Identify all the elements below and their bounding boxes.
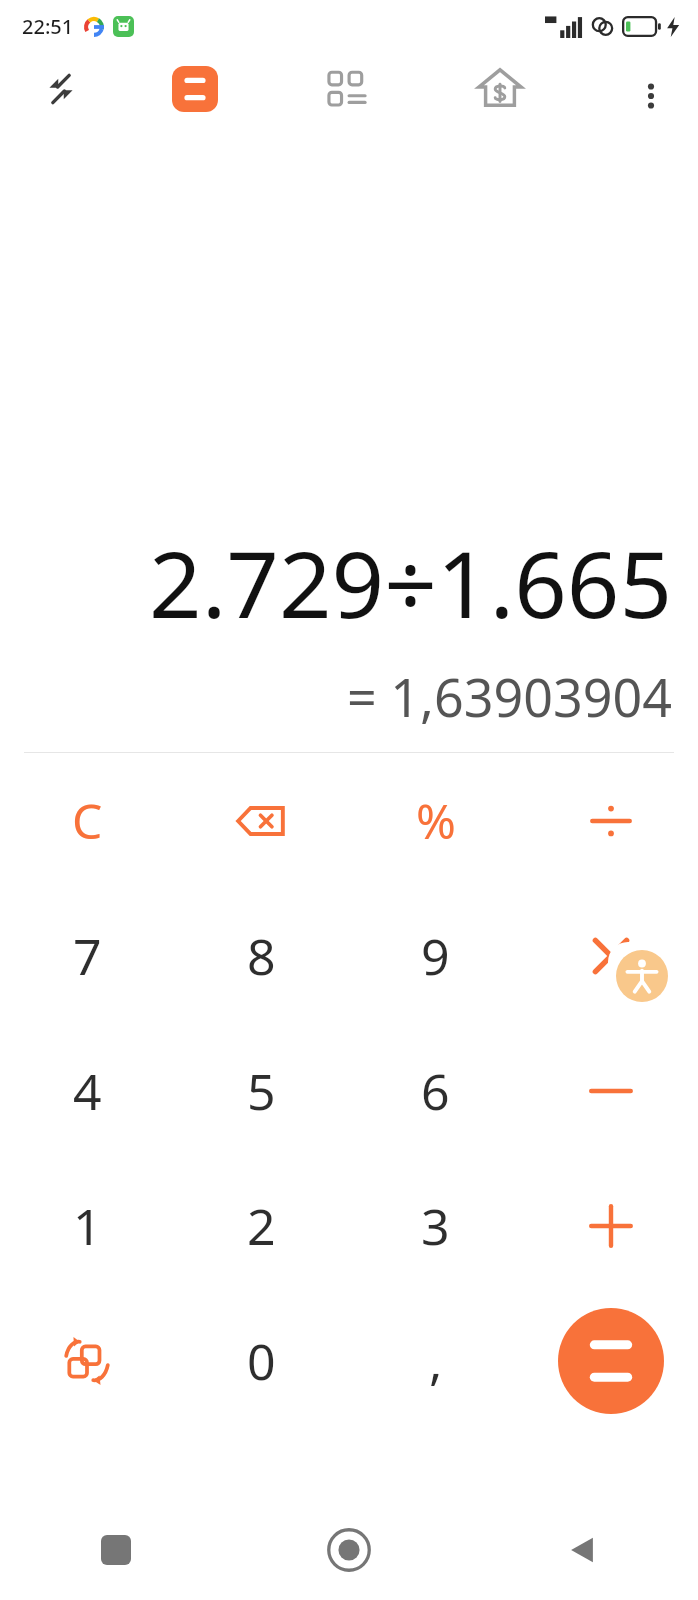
button[interactable]: Recents xyxy=(0,1500,232,1600)
button[interactable]: Equals xyxy=(558,1308,664,1414)
button[interactable]: Minus xyxy=(523,1023,698,1158)
staticText: 6 xyxy=(421,1057,450,1125)
button[interactable]: Clear xyxy=(0,753,174,888)
button[interactable]: , xyxy=(348,1293,523,1428)
staticText: 4 xyxy=(73,1057,102,1125)
staticText: 1 xyxy=(73,1192,102,1260)
staticText: 5 xyxy=(247,1057,276,1125)
staticText: % xyxy=(416,788,456,853)
staticText: , xyxy=(429,1327,443,1395)
button[interactable]: Tools xyxy=(310,52,384,126)
staticText: 2.729÷1.665 xyxy=(26,520,672,645)
button[interactable]: 4 xyxy=(0,1023,174,1158)
button[interactable]: 7 xyxy=(0,888,174,1023)
button[interactable]: Home xyxy=(232,1500,465,1600)
button[interactable]: Mortgage xyxy=(463,52,537,126)
button[interactable]: Backspace xyxy=(174,753,348,888)
button[interactable]: Calculator xyxy=(158,52,232,126)
staticText: 8 xyxy=(247,922,276,990)
button[interactable]: Back xyxy=(465,1500,698,1600)
staticText: C xyxy=(72,788,103,853)
staticText: = 1,63903904 xyxy=(26,661,672,732)
staticText: 9 xyxy=(421,922,450,990)
staticText: 22:51 xyxy=(22,13,74,40)
button[interactable]: 6 xyxy=(348,1023,523,1158)
button[interactable]: 0 xyxy=(174,1293,348,1428)
button[interactable]: 3 xyxy=(348,1158,523,1293)
staticText: 0 xyxy=(247,1327,276,1395)
button[interactable]: 8 xyxy=(174,888,348,1023)
button[interactable]: Convert units xyxy=(0,1293,174,1428)
button[interactable]: 1 xyxy=(0,1158,174,1293)
staticText: 7 xyxy=(73,922,102,990)
button[interactable]: More options xyxy=(618,63,684,129)
button[interactable]: Divide xyxy=(523,753,698,888)
button[interactable]: Accessibility menu xyxy=(602,936,682,1016)
button[interactable]: Multiply xyxy=(523,888,698,1023)
button[interactable]: Collapse xyxy=(24,52,98,126)
staticText: 2 xyxy=(247,1192,276,1260)
button[interactable]: 5 xyxy=(174,1023,348,1158)
button[interactable]: 9 xyxy=(348,888,523,1023)
button[interactable]: Percent xyxy=(348,753,523,888)
button[interactable]: 2 xyxy=(174,1158,348,1293)
staticText: 3 xyxy=(421,1192,450,1260)
button[interactable]: Plus xyxy=(523,1158,698,1293)
